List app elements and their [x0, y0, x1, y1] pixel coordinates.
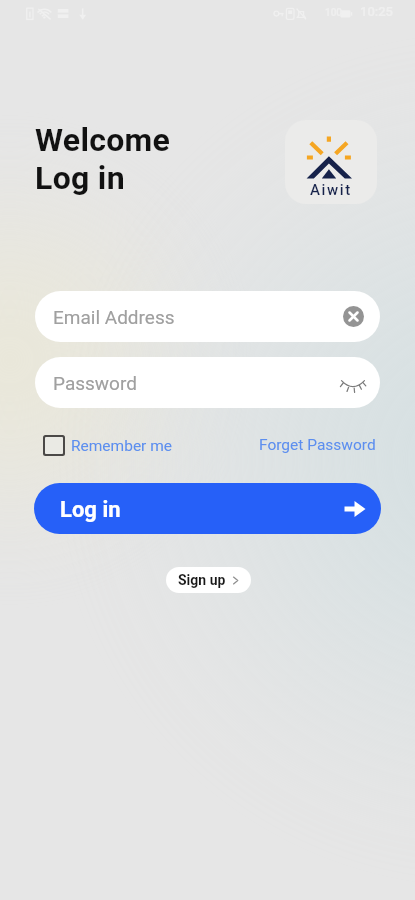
button[interactable]: Forget Password [259, 436, 376, 454]
staticText: Password [53, 372, 137, 394]
button[interactable]: Show password [340, 376, 366, 396]
staticText: Forget Password [259, 436, 376, 454]
staticText: Email Address [53, 306, 175, 328]
staticText: Welcome [35, 121, 171, 159]
button[interactable]: Remember me [43, 435, 173, 456]
staticText: Aiwit [310, 181, 352, 199]
staticText: 100 [325, 7, 343, 19]
button[interactable]: Password [35, 357, 380, 408]
staticText: 10:25 [360, 4, 394, 19]
button[interactable]: Email Address [35, 291, 380, 342]
button[interactable]: Clear email [343, 306, 364, 327]
button[interactable]: Log in [34, 483, 381, 534]
staticText: Log in [60, 497, 121, 523]
staticText: Remember me [71, 437, 173, 455]
button[interactable]: Sign up [166, 567, 251, 593]
staticText: Sign up [178, 572, 226, 588]
button[interactable]: Aiwit logo [285, 120, 377, 204]
staticText: Log in [35, 159, 125, 197]
